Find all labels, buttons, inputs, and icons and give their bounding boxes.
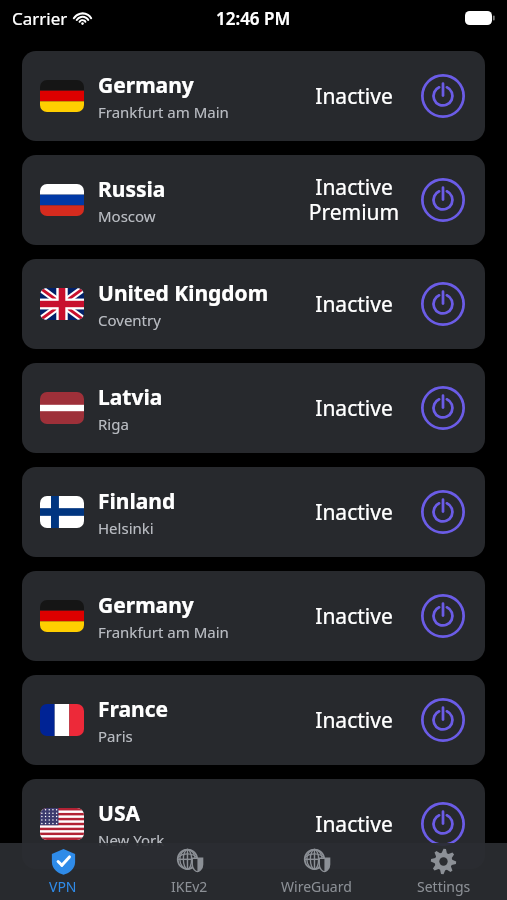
button[interactable]: USA — [22, 779, 485, 869]
button[interactable]: VPN — [0, 844, 126, 900]
staticText: Inactive Premium — [295, 173, 413, 227]
staticText: Inactive — [315, 810, 393, 839]
staticText: Inactive — [315, 290, 393, 319]
staticText: New York — [98, 830, 165, 850]
staticText: Riga — [98, 414, 129, 434]
staticText: France — [98, 695, 169, 724]
staticText: United Kingdom — [98, 279, 269, 308]
staticText: Inactive — [315, 82, 393, 111]
staticText: Settings — [417, 877, 471, 896]
staticText: Inactive — [315, 394, 393, 423]
button[interactable]: Connect to USA — [419, 800, 467, 848]
staticText: WireGuard — [281, 877, 352, 896]
button[interactable]: Germany — [22, 571, 485, 661]
button[interactable]: United Kingdom — [22, 259, 485, 349]
button[interactable]: WireGuard — [253, 843, 380, 900]
button[interactable]: Latvia — [22, 363, 485, 453]
staticText: Moscow — [98, 206, 156, 226]
staticText: Russia — [98, 175, 166, 204]
staticText: Inactive — [315, 602, 393, 631]
button[interactable]: Connect to Russia — [419, 176, 467, 224]
staticText: Frankfurt am Main — [98, 622, 229, 642]
button[interactable]: Connect to France — [419, 696, 467, 744]
staticText: Carrier — [12, 7, 68, 30]
staticText: Inactive — [315, 498, 393, 527]
staticText: Latvia — [98, 383, 163, 412]
button[interactable]: IKEv2 — [126, 843, 253, 900]
staticText: Finland — [98, 487, 176, 516]
button[interactable]: Connect to Latvia — [419, 384, 467, 432]
staticText: Germany — [98, 591, 194, 620]
button[interactable]: Connect to Germany — [419, 592, 467, 640]
staticText: IKEv2 — [171, 877, 208, 896]
staticText: 12:46 PM — [216, 7, 291, 30]
button[interactable]: Germany — [22, 51, 485, 141]
staticText: Coventry — [98, 310, 161, 330]
button[interactable]: Finland — [22, 467, 485, 557]
button[interactable]: Russia — [22, 155, 485, 245]
staticText: VPN — [49, 877, 77, 896]
staticText: Frankfurt am Main — [98, 102, 229, 122]
button[interactable]: Connect to Finland — [419, 488, 467, 536]
button[interactable]: Settings — [380, 844, 507, 900]
staticText: Germany — [98, 71, 194, 100]
staticText: Helsinki — [98, 518, 154, 538]
staticText: USA — [98, 799, 140, 828]
staticText: Inactive — [315, 706, 393, 735]
staticText: Paris — [98, 726, 133, 746]
button[interactable]: Connect to Germany — [419, 72, 467, 120]
button[interactable]: Connect to United Kingdom — [419, 280, 467, 328]
button[interactable]: France — [22, 675, 485, 765]
